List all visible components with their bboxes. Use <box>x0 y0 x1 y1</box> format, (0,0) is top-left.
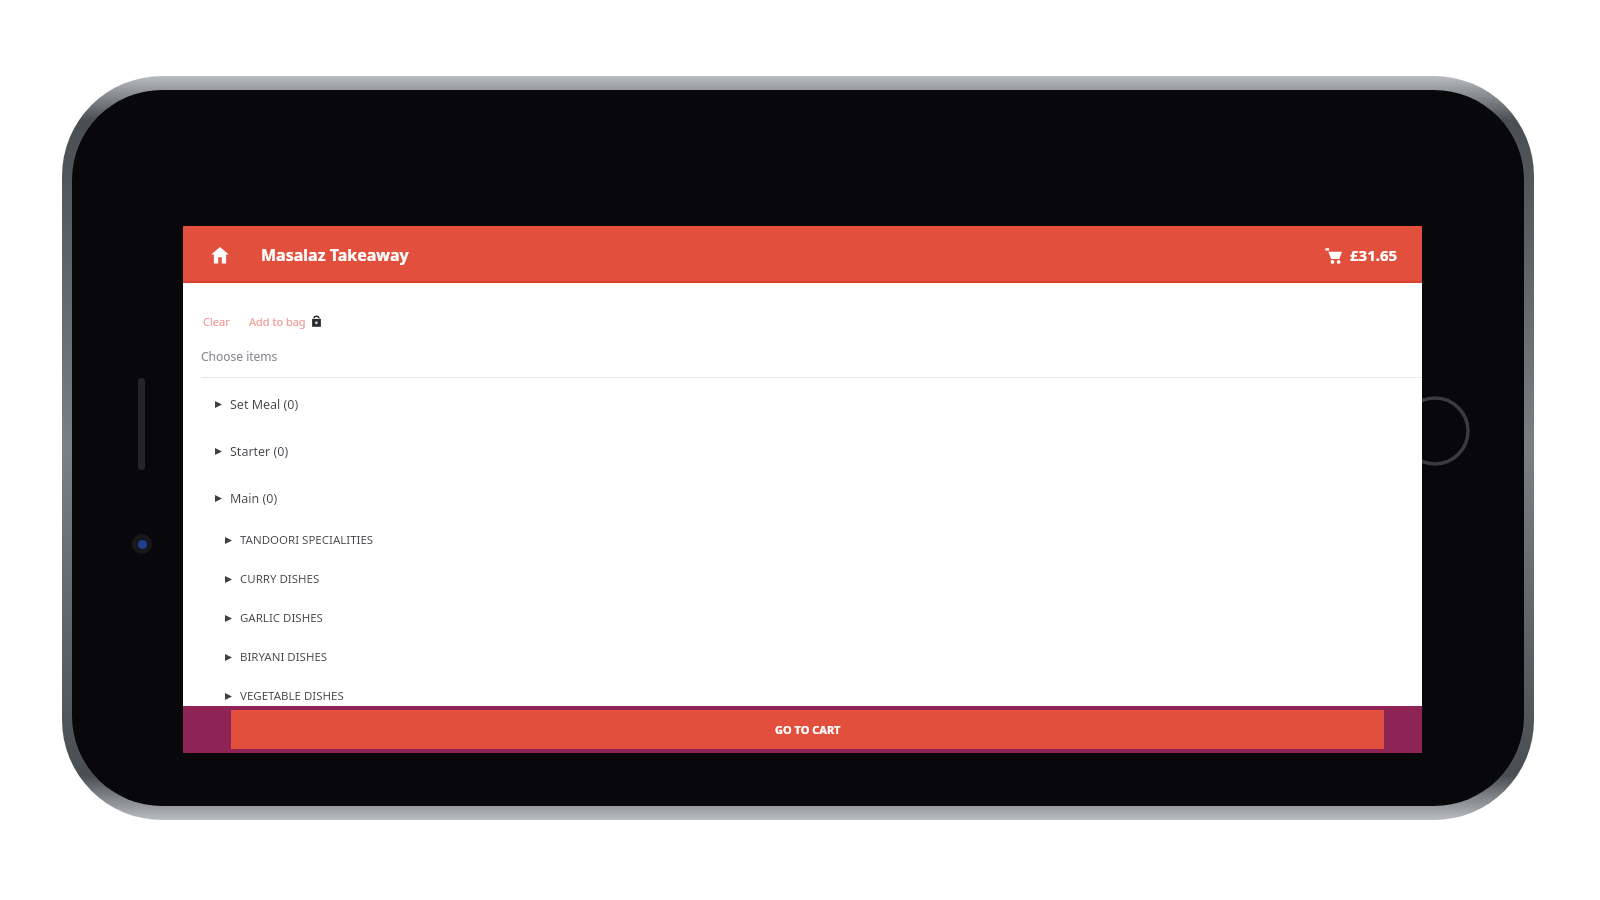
button[interactable]: BIRYANI DISHES <box>183 647 1422 667</box>
staticText: £31.65 <box>1350 245 1398 265</box>
button[interactable]: Add to bag <box>247 311 324 332</box>
button[interactable]: Set Meal (0) <box>183 394 1422 415</box>
staticText: Choose items <box>201 348 278 364</box>
button[interactable]: Home <box>203 238 237 272</box>
staticText: CURRY DISHES <box>240 571 320 587</box>
staticText: Set Meal (0) <box>230 396 299 413</box>
button[interactable]: GO TO CART <box>231 710 1384 749</box>
staticText: Clear <box>203 314 230 329</box>
button[interactable]: Starter (0) <box>183 441 1422 462</box>
staticText: GO TO CART <box>775 722 841 737</box>
staticText: GARLIC DISHES <box>240 610 323 626</box>
button[interactable]: TANDOORI SPECIALITIES <box>183 530 1422 550</box>
staticText: Add to bag <box>249 314 306 329</box>
staticText: Starter (0) <box>230 443 289 460</box>
staticText: TANDOORI SPECIALITIES <box>240 532 374 548</box>
button[interactable]: Main (0) <box>183 488 1422 509</box>
staticText: Main (0) <box>230 490 278 507</box>
button[interactable]: VEGETABLE DISHES <box>183 686 1422 706</box>
button[interactable]: GARLIC DISHES <box>183 608 1422 628</box>
button[interactable]: Clear <box>201 311 232 332</box>
button[interactable]: CURRY DISHES <box>183 569 1422 589</box>
staticText: VEGETABLE DISHES <box>240 688 344 704</box>
staticText: BIRYANI DISHES <box>240 649 328 665</box>
button[interactable]: Cart £31.65 <box>1321 241 1402 269</box>
staticText: Masalaz Takeaway <box>261 244 409 266</box>
